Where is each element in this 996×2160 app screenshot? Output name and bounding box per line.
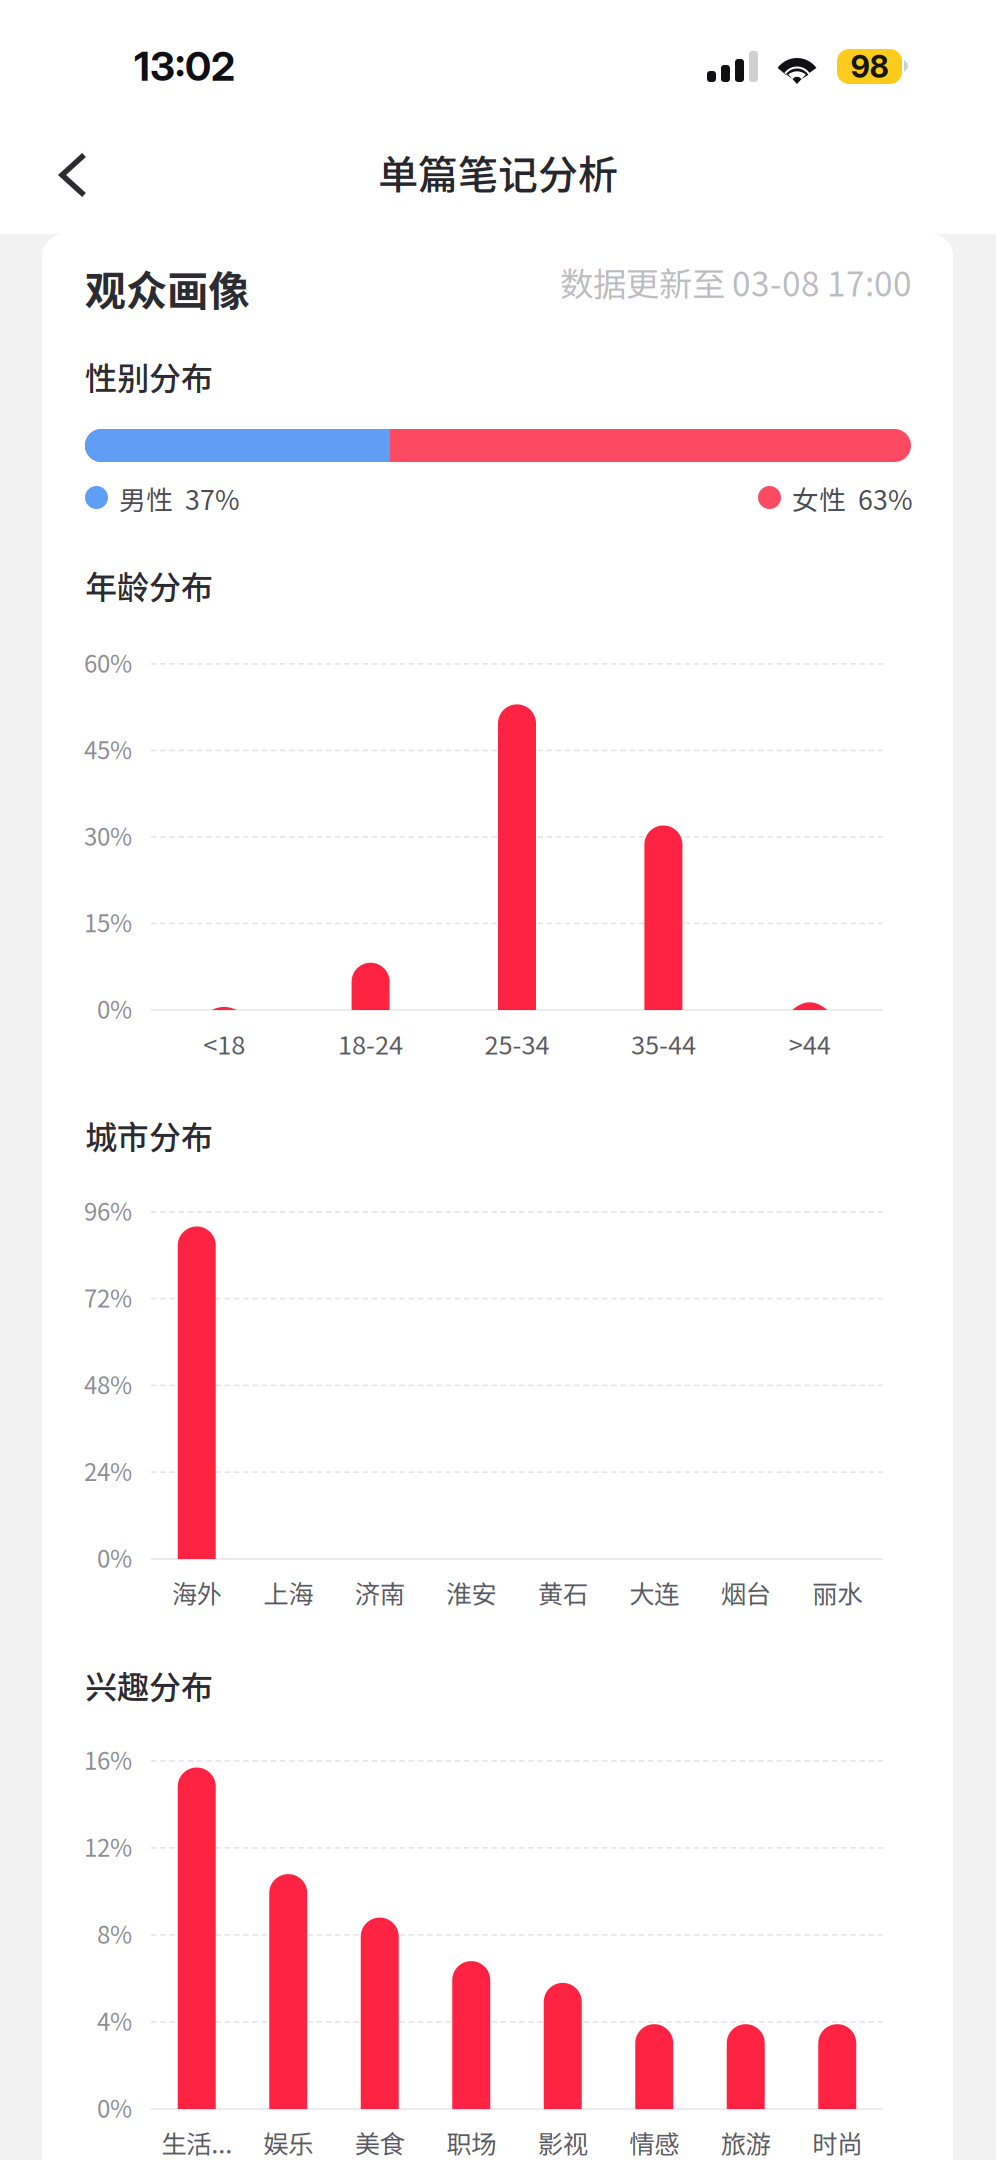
staticText: 单篇笔记分析	[378, 143, 618, 201]
staticText: 4%	[97, 2003, 132, 2038]
staticText: 数据更新至 03-08 17:00	[560, 258, 912, 306]
staticText: 48%	[84, 1366, 132, 1401]
staticText: 25-34	[484, 1025, 549, 1062]
staticText: 城市分布	[85, 1112, 213, 1158]
staticText: 35-44	[631, 1025, 696, 1062]
staticText: 8%	[97, 1916, 132, 1951]
staticText: 60%	[84, 645, 132, 680]
staticText: 时尚	[812, 2124, 862, 2160]
staticText: 观众画像	[85, 258, 249, 318]
staticText: 娱乐	[263, 2124, 313, 2160]
staticText: <18	[203, 1025, 245, 1062]
staticText: 18-24	[338, 1025, 403, 1062]
staticText: 性别分布	[85, 353, 213, 399]
staticText: >44	[789, 1025, 831, 1062]
staticText: 0%	[97, 1540, 132, 1575]
staticText: 女性 63%	[792, 479, 913, 518]
staticText: 年龄分布	[85, 562, 213, 608]
staticText: 72%	[84, 1280, 132, 1315]
staticText: 丽水	[812, 1574, 862, 1611]
staticText: 15%	[84, 904, 132, 939]
staticText: 上海	[263, 1574, 313, 1611]
staticText: 96%	[84, 1193, 132, 1228]
staticText: 45%	[84, 731, 132, 766]
staticText: 24%	[84, 1453, 132, 1488]
staticText: 济南	[355, 1574, 405, 1611]
staticText: 兴趣分布	[85, 1662, 213, 1708]
staticText: 淮安	[446, 1574, 496, 1611]
staticText: 黄石	[538, 1574, 588, 1611]
staticText: 12%	[84, 1829, 132, 1864]
staticText: 生活...	[161, 2124, 232, 2160]
staticText: 烟台	[721, 1574, 771, 1611]
staticText: 大连	[629, 1574, 679, 1611]
staticText: 98	[850, 48, 888, 85]
staticText: 影视	[538, 2124, 588, 2160]
staticText: 旅游	[721, 2124, 771, 2160]
staticText: 情感	[629, 2124, 679, 2160]
staticText: 0%	[97, 991, 132, 1026]
staticText: 13:02	[134, 42, 235, 90]
staticText: 0%	[97, 2090, 132, 2125]
staticText: 男性 37%	[119, 479, 240, 518]
staticText: 职场	[446, 2124, 496, 2160]
staticText: 30%	[84, 818, 132, 853]
staticText: 海外	[172, 1574, 222, 1611]
staticText: 美食	[355, 2124, 405, 2160]
staticText: 16%	[84, 1742, 132, 1777]
button[interactable]: Back	[27, 131, 119, 219]
